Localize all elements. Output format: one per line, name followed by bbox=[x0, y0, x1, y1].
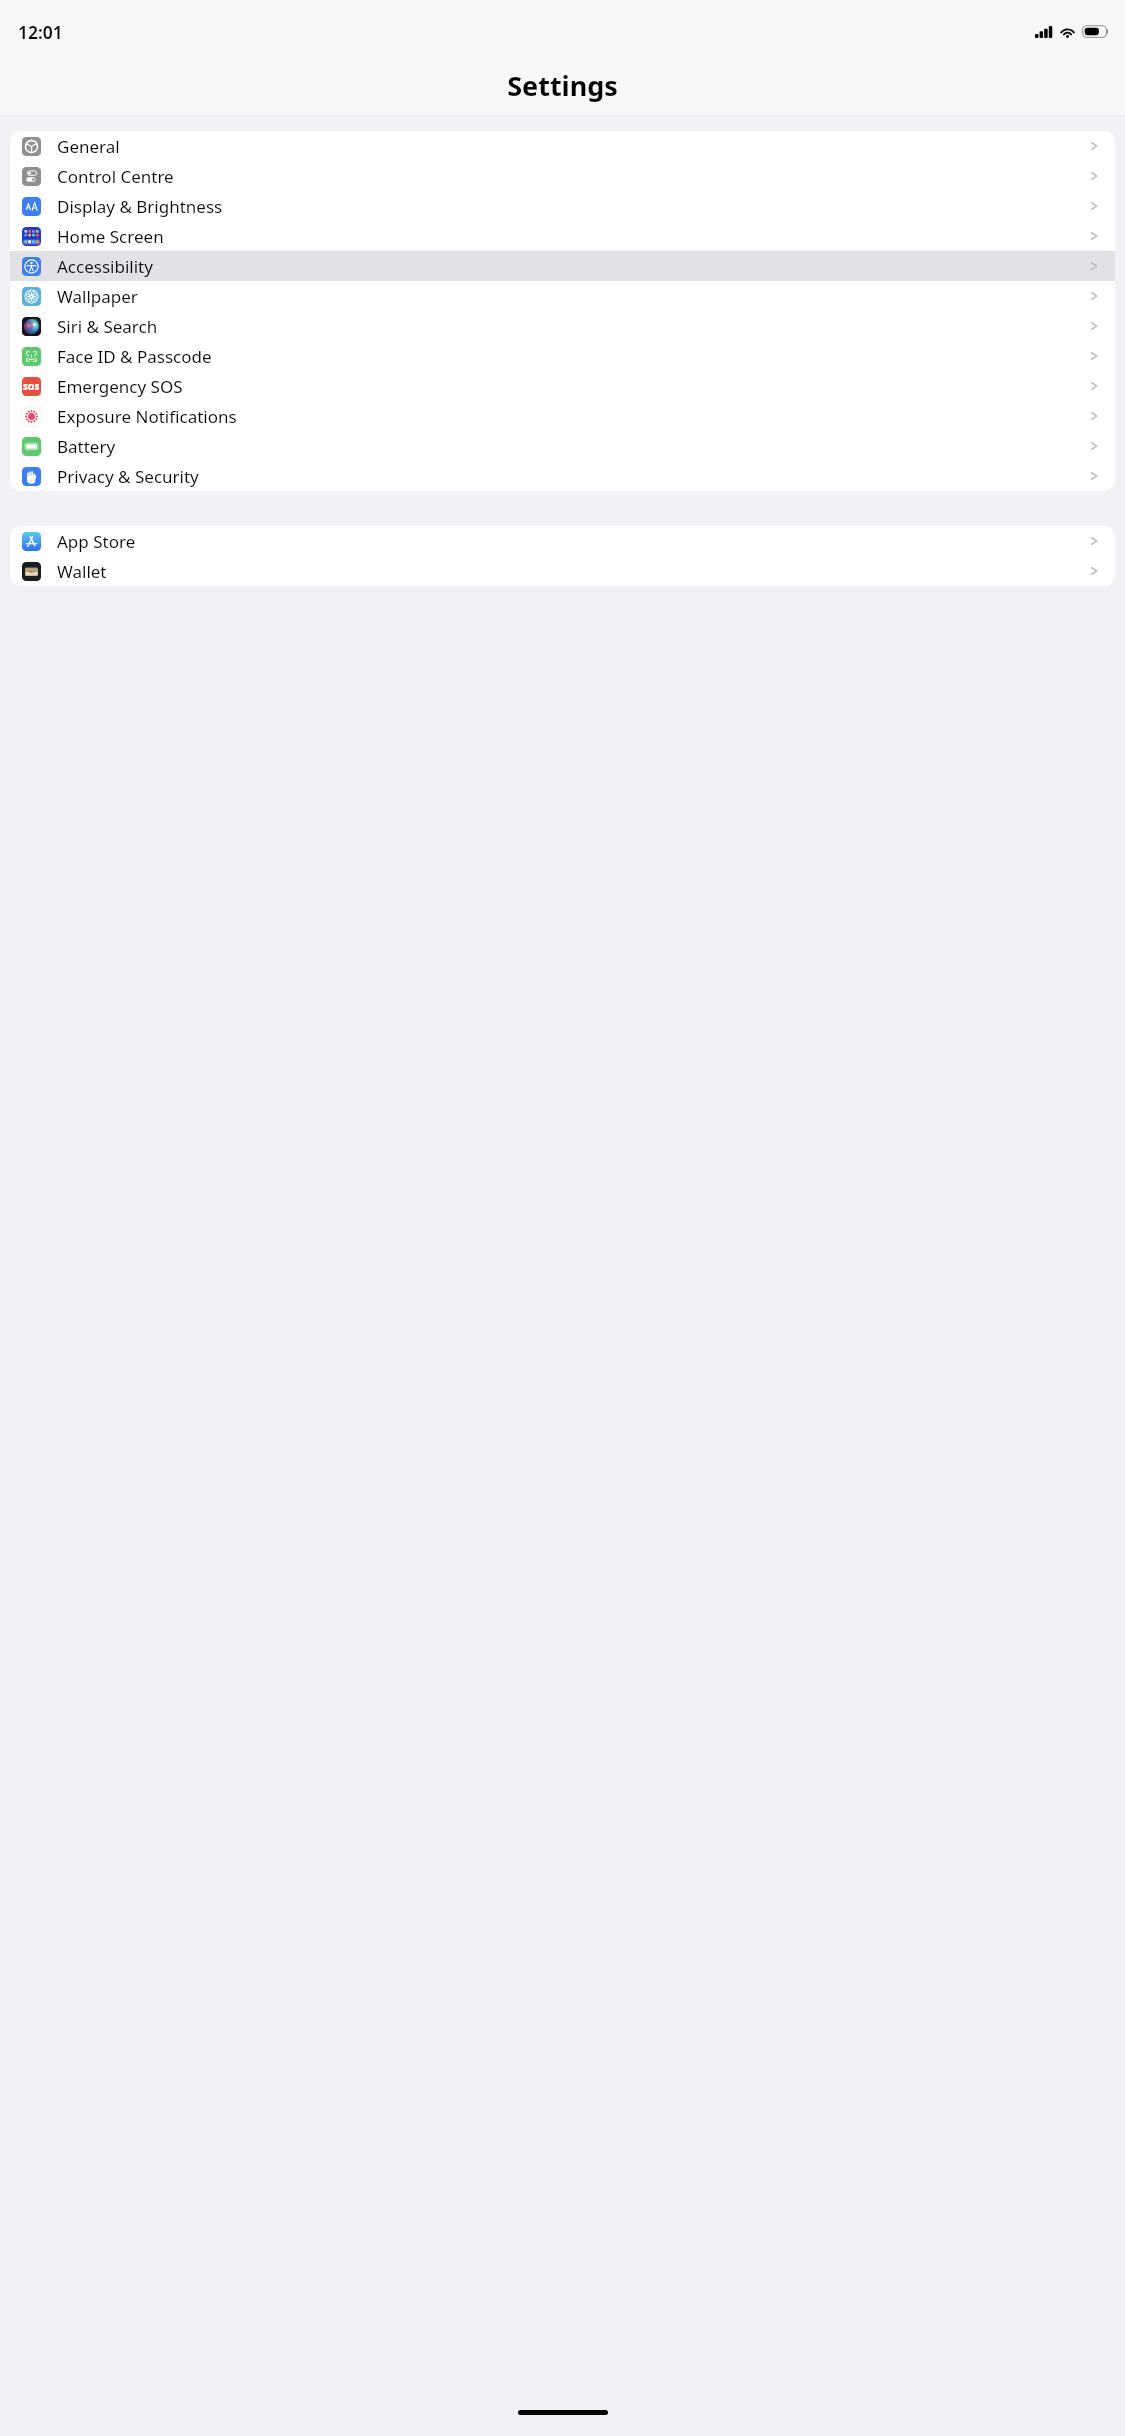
staticText: SOS bbox=[23, 381, 40, 392]
button[interactable]: Display & Brightness bbox=[10, 191, 1115, 221]
button[interactable]: General bbox=[10, 131, 1115, 161]
staticText: Control Centre bbox=[57, 165, 174, 188]
other: Battery bbox=[1082, 25, 1109, 38]
button[interactable]: Privacy & Security bbox=[10, 461, 1115, 491]
button[interactable]: App Store bbox=[10, 526, 1115, 556]
staticText: Wallpaper bbox=[57, 285, 138, 308]
button[interactable]: Home Screen bbox=[10, 221, 1115, 251]
button[interactable]: Exposure Notifications bbox=[10, 401, 1115, 431]
staticText: Display & Brightness bbox=[57, 195, 223, 218]
other: Cellular signal bbox=[1035, 26, 1053, 38]
button[interactable]: Battery bbox=[10, 431, 1115, 461]
other: Wi-Fi bbox=[1059, 26, 1076, 38]
button[interactable]: Accessibility bbox=[10, 251, 1115, 281]
staticText: 12:01 bbox=[18, 20, 63, 44]
staticText: Face ID & Passcode bbox=[57, 345, 212, 368]
staticText: Emergency SOS bbox=[57, 375, 183, 398]
button[interactable]: Face ID & Passcode bbox=[10, 341, 1115, 371]
staticText: Exposure Notifications bbox=[57, 405, 237, 428]
button[interactable]: SOS bbox=[10, 371, 1115, 401]
staticText: Settings bbox=[507, 67, 618, 104]
button[interactable]: Wallet bbox=[10, 556, 1115, 586]
staticText: Wallet bbox=[57, 560, 107, 583]
button[interactable]: Siri & Search bbox=[10, 311, 1115, 341]
staticText: App Store bbox=[57, 530, 136, 553]
staticText: Accessibility bbox=[57, 255, 153, 278]
staticText: Privacy & Security bbox=[57, 465, 199, 488]
staticText: General bbox=[57, 135, 120, 158]
button[interactable]: Wallpaper bbox=[10, 281, 1115, 311]
staticText: Battery bbox=[57, 435, 116, 458]
staticText: Siri & Search bbox=[57, 315, 158, 338]
staticText: Home Screen bbox=[57, 225, 164, 248]
button[interactable]: Control Centre bbox=[10, 161, 1115, 191]
